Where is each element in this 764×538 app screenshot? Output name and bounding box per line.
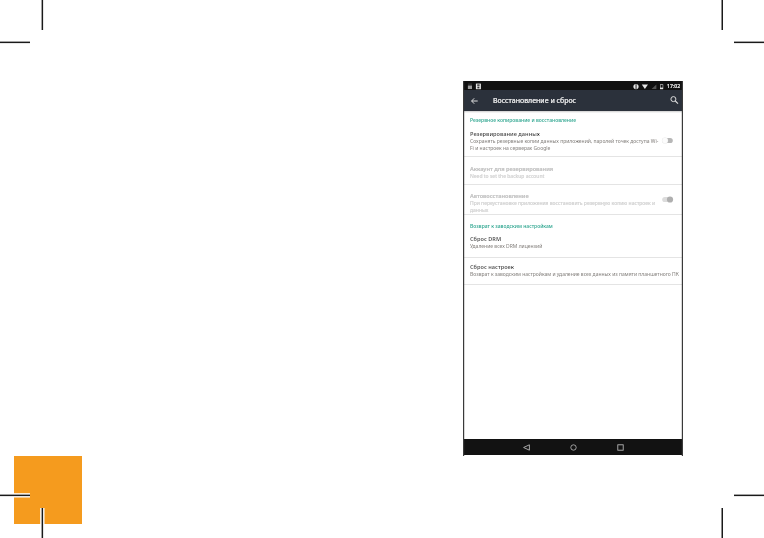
button[interactable]: Сброс настроек — [463, 263, 683, 278]
staticText: Возврат к заводским настройкам — [470, 223, 553, 230]
button[interactable]: Сброс DRM — [463, 235, 683, 250]
staticText: Need to set the backup account — [470, 173, 545, 180]
button[interactable]: Home — [559, 439, 587, 455]
staticText: Восстановление и сброс — [493, 96, 577, 106]
button[interactable]: Back — [466, 90, 483, 111]
staticText: Удаление всех DRM лицензий — [470, 243, 543, 250]
button[interactable]: Автовосстановление — [463, 192, 683, 213]
button[interactable]: Резервирование данных — [463, 130, 683, 151]
staticText: Сброс настроек — [470, 263, 515, 271]
staticText: Резервное копирование и восстановление — [470, 117, 576, 124]
button[interactable]: Back — [512, 439, 540, 455]
staticText: Резервирование данных — [470, 130, 540, 138]
staticText: Возврат к заводским настройкам и удалени… — [470, 271, 679, 278]
staticText: 17:02 — [667, 82, 681, 89]
staticText: Автовосстановление — [470, 192, 529, 200]
staticText: При переустановке приложения восстановит… — [470, 200, 656, 213]
button[interactable]: Search — [666, 90, 683, 111]
button[interactable]: Аккаунт для резервирования — [463, 165, 683, 180]
staticText: Сброс DRM — [470, 235, 502, 243]
staticText: Аккаунт для резервирования — [470, 165, 554, 173]
staticText: Сохранять резервные копии данных приложе… — [470, 138, 659, 151]
button[interactable]: Recent apps — [606, 439, 634, 455]
